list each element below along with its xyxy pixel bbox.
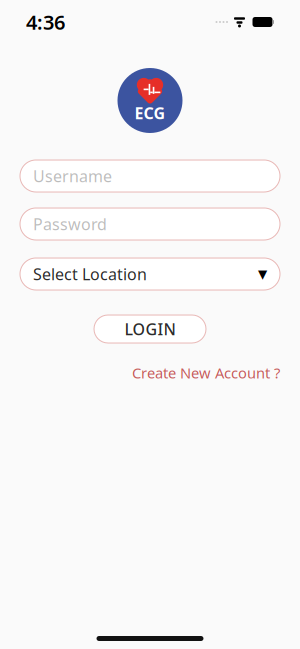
staticText: Create New Account ?	[132, 363, 280, 382]
staticText: ▼	[258, 267, 267, 281]
staticText: 4:36	[26, 9, 65, 35]
button[interactable]: LOGIN	[94, 315, 206, 343]
staticText: Password	[33, 213, 107, 235]
staticText: LOGIN	[124, 318, 175, 340]
staticText: Select Location	[33, 263, 147, 285]
staticText: Username	[33, 165, 112, 187]
staticText: ECG	[134, 102, 165, 124]
button[interactable]: Password	[20, 208, 280, 240]
button[interactable]: Username	[20, 160, 280, 192]
button[interactable]: Create New Account ?	[132, 359, 280, 386]
button[interactable]: Select Location	[20, 258, 280, 290]
